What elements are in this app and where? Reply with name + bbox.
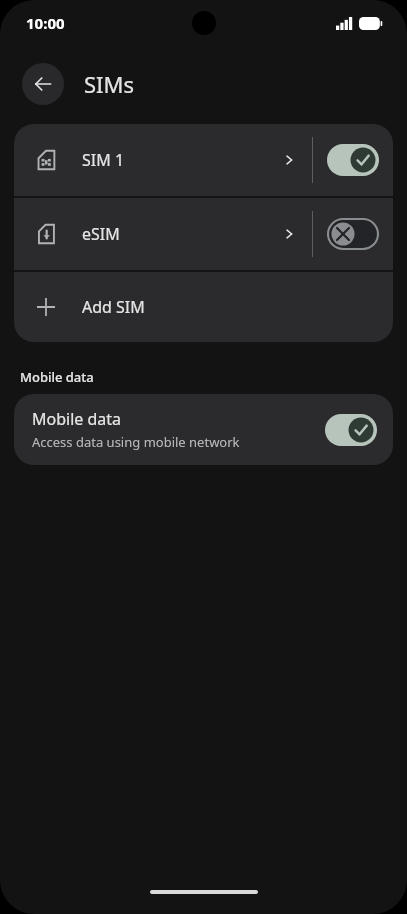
staticText: SIMs	[84, 69, 135, 99]
button[interactable]: Disable SIM 1	[327, 144, 379, 176]
button[interactable]: On	[327, 144, 379, 176]
button[interactable]: Back	[22, 63, 64, 105]
staticText: eSIM	[82, 223, 282, 245]
staticText: Mobile data	[20, 368, 94, 386]
staticText: 10:00	[26, 13, 65, 33]
button[interactable]: Enable eSIM	[327, 218, 379, 250]
staticText: Add SIM	[82, 296, 145, 318]
button[interactable]: On	[325, 414, 377, 446]
staticText: Mobile data	[32, 408, 122, 430]
button[interactable]: Mobile data	[14, 394, 393, 465]
button[interactable]: eSIM	[14, 198, 393, 270]
button[interactable]: Add SIM	[14, 272, 393, 342]
button[interactable]: Off	[327, 218, 379, 250]
staticText: SIM 1	[82, 149, 282, 171]
staticText: Access data using mobile network	[32, 433, 240, 451]
button[interactable]: SIM 1	[14, 124, 393, 196]
